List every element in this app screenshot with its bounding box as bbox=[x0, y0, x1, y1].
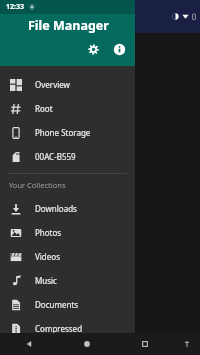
staticText: Music bbox=[35, 275, 57, 286]
staticText: 00AC-B559 bbox=[35, 151, 76, 162]
staticText: File Manager bbox=[28, 17, 109, 34]
staticText: Overview bbox=[35, 79, 70, 90]
staticText: Photos bbox=[35, 227, 62, 238]
staticText: Root bbox=[35, 103, 53, 114]
button[interactable]: Back bbox=[0, 333, 58, 355]
button[interactable]: Compressed bbox=[0, 316, 135, 340]
button[interactable]: Overview bbox=[0, 72, 135, 96]
staticText: 12:33 bbox=[6, 2, 24, 12]
staticText: Documents bbox=[35, 299, 79, 310]
button[interactable]: Home bbox=[58, 333, 116, 355]
staticText: Your Collections bbox=[9, 180, 66, 190]
staticText: Videos bbox=[35, 251, 60, 262]
staticText: Downloads bbox=[35, 203, 77, 214]
staticText: Phone Storage bbox=[35, 127, 91, 138]
button[interactable]: Recents bbox=[116, 333, 174, 355]
button[interactable]: Music bbox=[0, 268, 135, 292]
button[interactable]: Documents bbox=[0, 292, 135, 316]
button[interactable]: 00AC-B559 bbox=[0, 144, 135, 168]
button[interactable]: Info bbox=[110, 40, 128, 58]
button[interactable]: Downloads bbox=[0, 196, 135, 220]
button[interactable]: Root bbox=[0, 96, 135, 120]
button[interactable]: Videos bbox=[0, 244, 135, 268]
button[interactable]: Phone Storage bbox=[0, 120, 135, 144]
staticText: Compressed bbox=[35, 323, 83, 334]
button[interactable]: Photos bbox=[0, 220, 135, 244]
button[interactable]: Settings bbox=[84, 40, 102, 58]
button[interactable]: Keyboard bbox=[174, 333, 200, 355]
